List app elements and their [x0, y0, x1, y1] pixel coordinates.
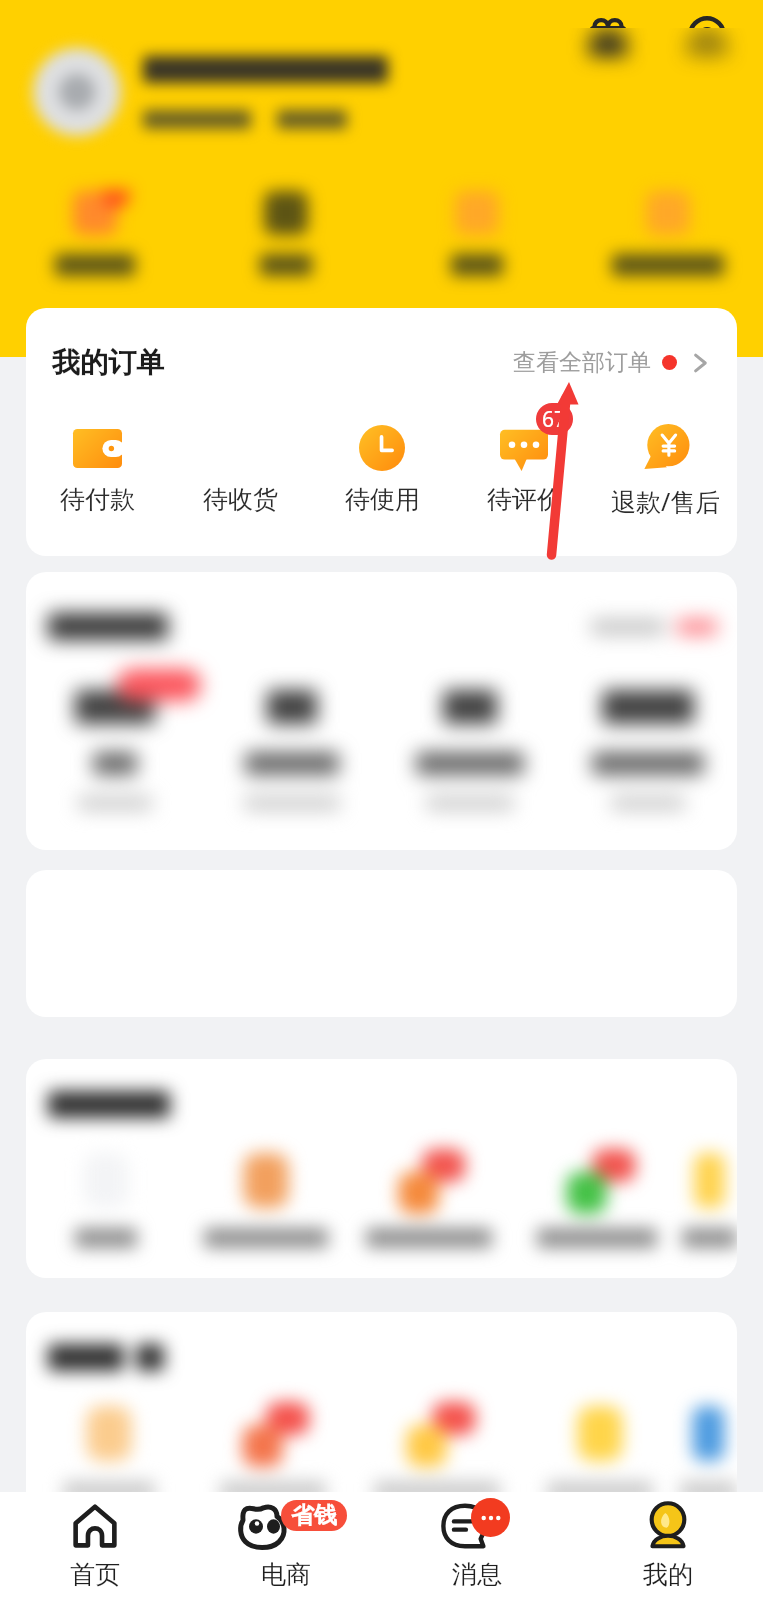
button[interactable]: 省钱	[190, 1492, 381, 1600]
button[interactable]: 待使用	[311, 423, 453, 515]
button[interactable]: Settings	[679, 28, 735, 77]
staticText: 查看全部订单	[513, 348, 651, 377]
button[interactable]: Cart	[580, 28, 636, 72]
staticText: 待收货	[203, 484, 278, 515]
button[interactable]: 退款/售后	[595, 423, 737, 518]
staticText: 待评价	[487, 484, 562, 515]
button[interactable]: 首页	[0, 1492, 190, 1600]
button[interactable]: 67	[453, 423, 595, 515]
staticText: 待使用	[345, 484, 420, 515]
staticText: 电商	[261, 1559, 311, 1590]
staticText: 省钱	[291, 1501, 337, 1530]
button[interactable]: Settings	[679, 21, 735, 28]
staticText: 67	[542, 405, 567, 434]
button[interactable]: 我的	[572, 1492, 763, 1600]
staticText: 待付款	[60, 484, 135, 515]
button[interactable]: Cart	[580, 16, 636, 28]
button[interactable]: 消息	[381, 1492, 572, 1600]
staticText: 首页	[70, 1559, 120, 1590]
staticText: 我的	[643, 1559, 693, 1590]
button[interactable]: 待付款	[26, 423, 169, 515]
staticText: 退款/售后	[611, 484, 721, 518]
button[interactable]: 待收货	[169, 423, 311, 515]
staticText: 消息	[452, 1559, 502, 1590]
button[interactable]: 查看全部订单	[507, 344, 717, 381]
staticText: 我的订单	[52, 345, 164, 380]
